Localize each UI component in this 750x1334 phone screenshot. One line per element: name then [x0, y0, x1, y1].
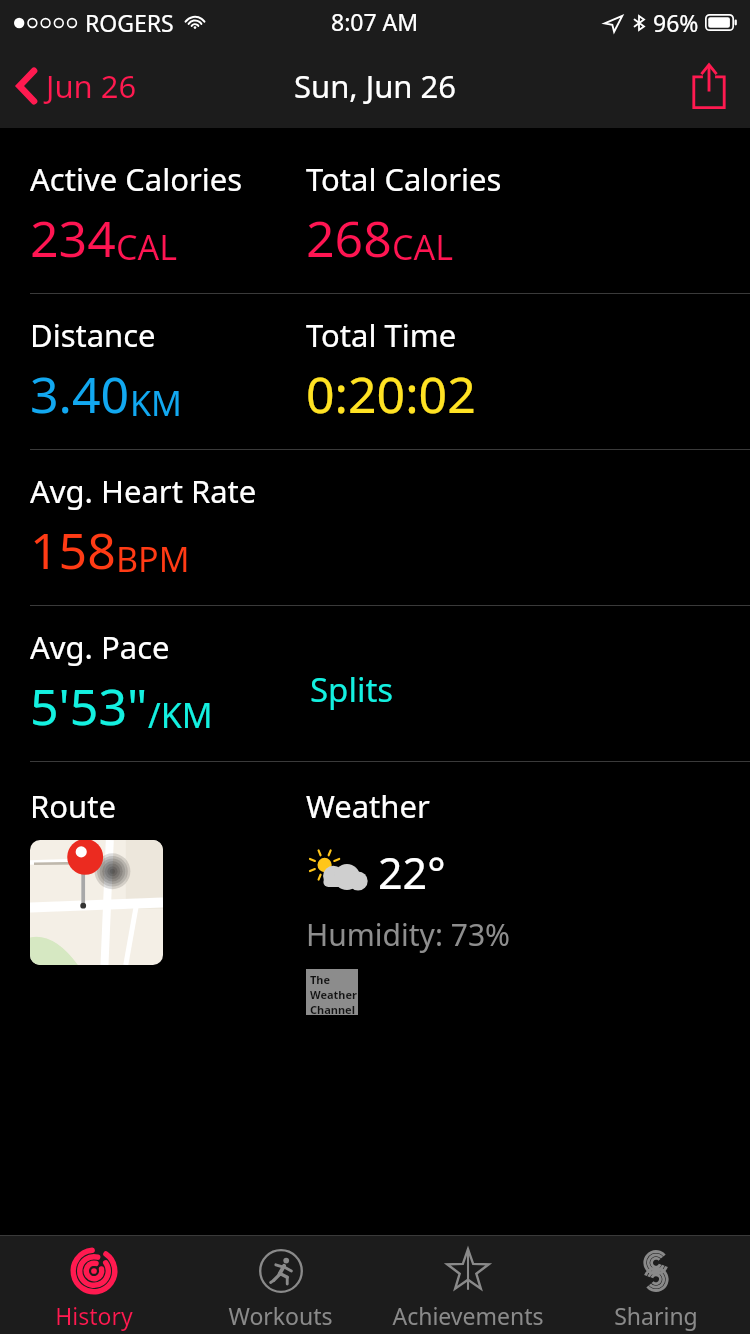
staticText: Achievements: [392, 1300, 544, 1331]
staticText: Weather: [306, 785, 430, 827]
staticText: Distance: [30, 314, 156, 356]
button[interactable]: Achievements: [374, 1236, 562, 1334]
button[interactable]: Jun 26: [10, 57, 143, 115]
staticText: Avg. Pace: [30, 626, 170, 668]
staticText: Sharing: [614, 1300, 698, 1331]
staticText: BPM: [116, 536, 190, 582]
staticText: 0:20:02: [306, 360, 476, 428]
staticText: Active Calories: [30, 158, 243, 200]
staticText: History: [55, 1300, 133, 1331]
staticText: 234: [30, 204, 116, 272]
staticText: Total Calories: [306, 158, 502, 200]
button[interactable]: History: [0, 1236, 187, 1334]
staticText: Jun 26: [46, 65, 137, 107]
staticText: Sun, Jun 26: [294, 65, 457, 107]
staticText: Avg. Heart Rate: [30, 470, 257, 512]
button[interactable]: Sharing: [562, 1236, 750, 1334]
staticText: 22°: [378, 843, 446, 902]
staticText: ROGERS: [85, 7, 174, 38]
staticText: Splits: [310, 667, 394, 712]
staticText: 3.40: [30, 360, 130, 428]
staticText: KM: [130, 380, 182, 426]
staticText: 5'53": [30, 672, 148, 740]
staticText: Total Time: [306, 314, 457, 356]
staticText: Humidity: 73%: [306, 914, 510, 955]
staticText: 158: [30, 516, 116, 584]
button[interactable]: Share: [682, 59, 736, 113]
staticText: CAL: [392, 224, 454, 270]
staticText: CAL: [116, 224, 178, 270]
staticText: The: [310, 972, 331, 987]
staticText: Weather: [310, 987, 357, 1002]
staticText: Workouts: [228, 1300, 333, 1331]
staticText: 96%: [653, 7, 699, 38]
staticText: /KM: [148, 692, 213, 738]
button[interactable]: Splits: [306, 663, 398, 716]
staticText: 268: [306, 204, 392, 272]
staticText: 8:07 AM: [331, 6, 419, 37]
button[interactable]: Workouts: [187, 1236, 374, 1334]
staticText: Route: [30, 785, 116, 827]
staticText: Channel: [310, 1002, 355, 1015]
button[interactable]: Route map: [30, 840, 163, 965]
